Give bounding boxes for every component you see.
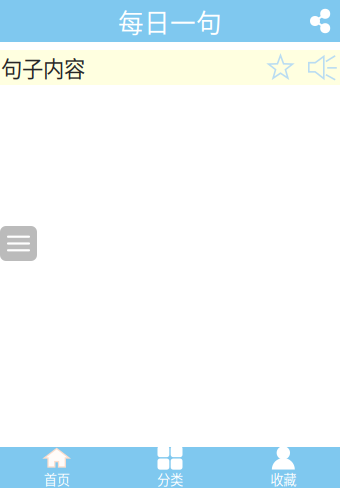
- staticText: 每日一句: [118, 3, 222, 40]
- button[interactable]: 首页: [0, 447, 113, 488]
- staticText: 首页: [44, 469, 70, 488]
- button[interactable]: Share: [300, 0, 340, 42]
- button[interactable]: Menu: [0, 226, 37, 261]
- staticText: 收藏: [270, 469, 296, 488]
- staticText: 句子内容: [1, 52, 85, 83]
- button[interactable]: Play sound: [308, 54, 337, 80]
- staticText: 分类: [157, 469, 183, 488]
- button[interactable]: 收藏: [227, 447, 340, 488]
- button[interactable]: 分类: [113, 447, 227, 488]
- button[interactable]: Favorite: [267, 55, 294, 80]
